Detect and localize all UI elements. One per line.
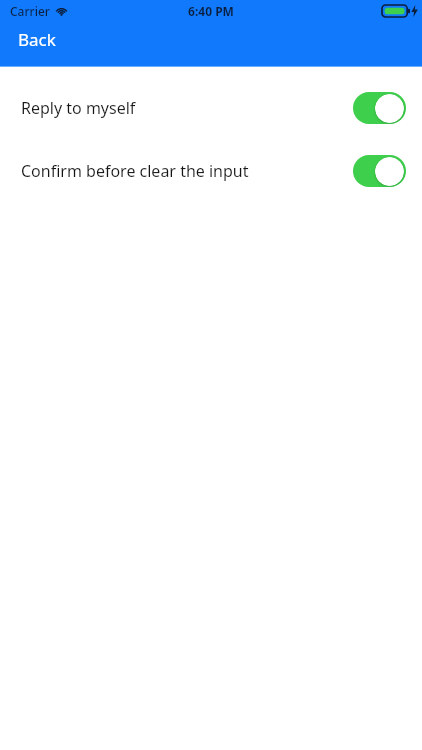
button[interactable]: Toggle xyxy=(353,92,406,124)
staticText: Reply to myself xyxy=(21,97,136,119)
staticText: 6:40 PM xyxy=(188,3,234,19)
button[interactable]: Toggle xyxy=(353,155,406,187)
staticText: Carrier xyxy=(10,3,50,19)
staticText: Confirm before clear the input xyxy=(21,160,249,182)
button[interactable]: Reply to myself xyxy=(0,89,422,127)
button[interactable]: Confirm before clear the input xyxy=(0,152,422,190)
button[interactable]: Back xyxy=(10,24,64,55)
staticText: Back xyxy=(18,28,56,51)
